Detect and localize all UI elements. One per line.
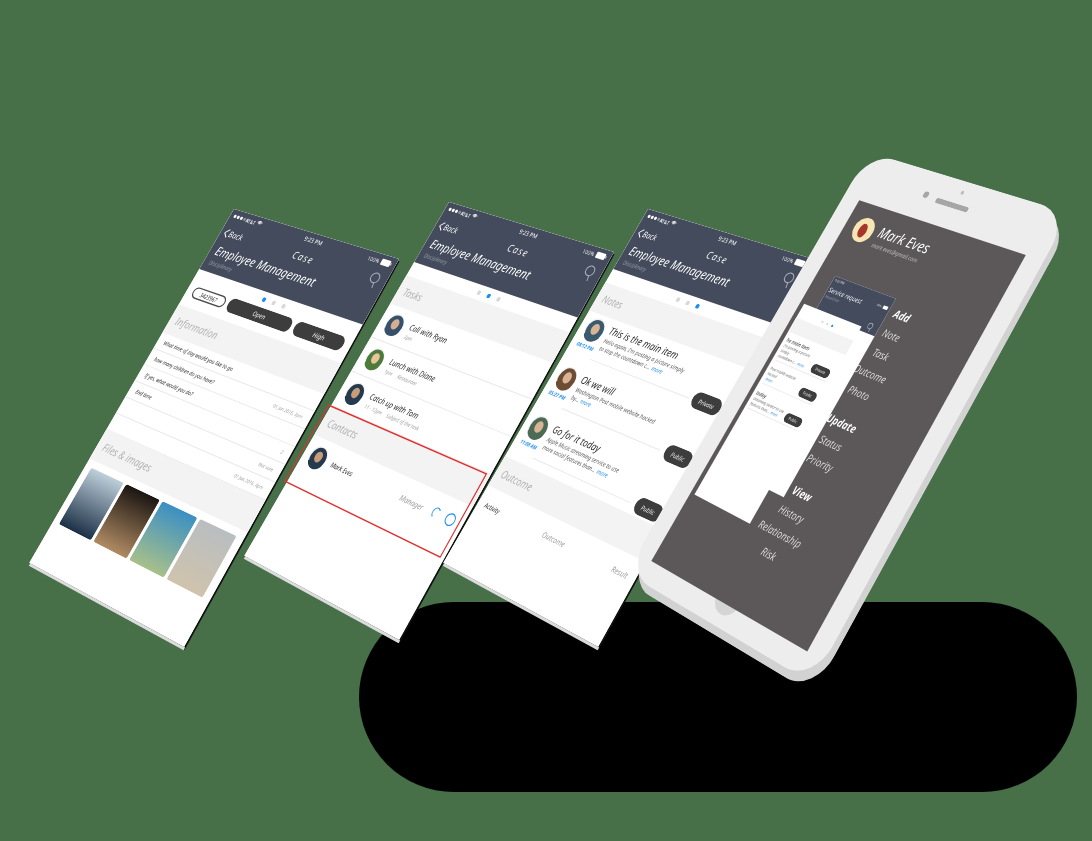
staticText: AT&T [244,217,257,226]
staticText: Outcome [851,360,890,387]
staticText: 11 - 12pm [363,402,384,416]
button[interactable]: Lunch with Diane [357,339,525,434]
staticText: Employee Management [212,242,320,291]
button[interactable]: Back [221,227,246,243]
button[interactable]: Catch up with Tom [337,373,505,471]
staticText: Case [505,241,532,260]
button[interactable]: Search [778,270,800,290]
staticText: Service request [827,285,865,306]
staticText: Outcome [540,529,568,550]
staticText: Disciplinary [208,258,234,273]
button[interactable]: 3423967 [190,286,228,309]
button[interactable]: Add [889,303,916,328]
button[interactable]: Status [815,428,847,457]
button[interactable]: Public [660,443,696,470]
button[interactable]: Search [579,263,601,283]
staticText: 2pm [403,333,415,343]
button[interactable]: View [788,479,817,508]
staticText: today [755,388,769,400]
staticText: 9:23 PM [717,234,739,247]
button[interactable]: Private [688,390,725,417]
staticText: High [311,329,327,343]
staticText: Restaurant [396,372,419,387]
staticText: 1pm [383,367,395,377]
button[interactable]: History [774,497,809,529]
button[interactable]: Photo [844,378,875,406]
staticText: more [595,467,610,479]
staticText: Mark Eves [329,460,355,479]
button[interactable]: Risk [757,540,782,567]
staticText: 9:23 PM [303,234,325,247]
staticText: how many children do you have? [153,355,216,386]
button[interactable]: Task [868,341,894,367]
staticText: Tasks [400,285,426,305]
staticText: Status [817,431,845,454]
button[interactable]: Priority [803,447,838,478]
staticText: Open [251,308,268,322]
button[interactable]: Call with Ryan [377,305,546,396]
button[interactable]: Back [635,227,660,243]
staticText: 100% [581,247,597,257]
staticText: mark.eves@gmail.com [870,240,920,264]
staticText: Ok we will [578,373,618,398]
button[interactable]: Back [436,220,461,236]
staticText: Priority [804,450,836,475]
button[interactable]: Note [878,322,905,348]
button[interactable]: Open [224,297,295,333]
staticText: more [579,396,593,408]
staticText: Public [639,503,657,517]
staticText: Employee Management [626,242,734,291]
staticText: Call with Ryan [407,321,450,345]
staticText: Add [890,306,914,326]
staticText: 08:12 PM [575,339,595,352]
staticText: 05:27 PM [547,388,567,402]
staticText: Photo [845,382,873,404]
button[interactable]: Call [427,504,445,522]
staticText: Hello again, I'm posting a picture simpl… [602,336,687,374]
button[interactable]: Relationship [754,513,807,554]
staticText: by... [570,393,582,404]
staticText: Back [226,228,246,243]
staticText: 100% [780,254,796,264]
staticText: 9:23 PM [834,278,846,286]
staticText: Private [697,397,716,411]
staticText: Public [802,390,813,399]
staticText: Go for it today [550,422,604,455]
staticText: Private [814,366,827,376]
staticText: AT&T [658,217,671,226]
staticText: more [650,364,665,375]
staticText: 11:08 AM [519,437,539,451]
staticText: 2 [279,448,285,456]
button[interactable]: Outcome [850,357,892,389]
staticText: 100% [876,303,883,308]
staticText: This is the main item [607,324,682,362]
button[interactable]: Update [823,407,862,439]
staticText: History [776,501,807,527]
staticText: Case [704,248,731,267]
staticText: Lunch with Diane [388,356,438,384]
staticText: more [764,376,774,384]
staticText: Notes [599,292,626,312]
staticText: Catch up with Tom [368,391,422,421]
staticText: 01 Jan 2016, 3pm [271,402,304,421]
staticText: Manager [398,492,426,513]
staticText: Disciplinary [423,251,449,266]
staticText: End time [134,388,154,402]
staticText: 100% [366,254,382,264]
staticText: Inspection [824,293,840,304]
staticText: Apple Music streaming service to use [546,435,622,474]
staticText: Post mobile website hacked [766,365,805,390]
button[interactable]: High [290,320,347,352]
staticText: Contacts [324,415,361,442]
button[interactable]: Search [364,270,386,290]
staticText: Result [609,563,631,581]
staticText: Risk [758,543,780,564]
staticText: 3423967 [198,291,219,304]
staticText: Mark Eves [874,222,935,258]
staticText: Employee Management [427,235,535,284]
button[interactable]: Message [440,509,460,530]
button[interactable]: Public [631,496,666,524]
staticText: Back [441,221,461,236]
staticText: more [796,361,806,369]
staticText: Washington Post mobile website hacked [574,385,657,425]
